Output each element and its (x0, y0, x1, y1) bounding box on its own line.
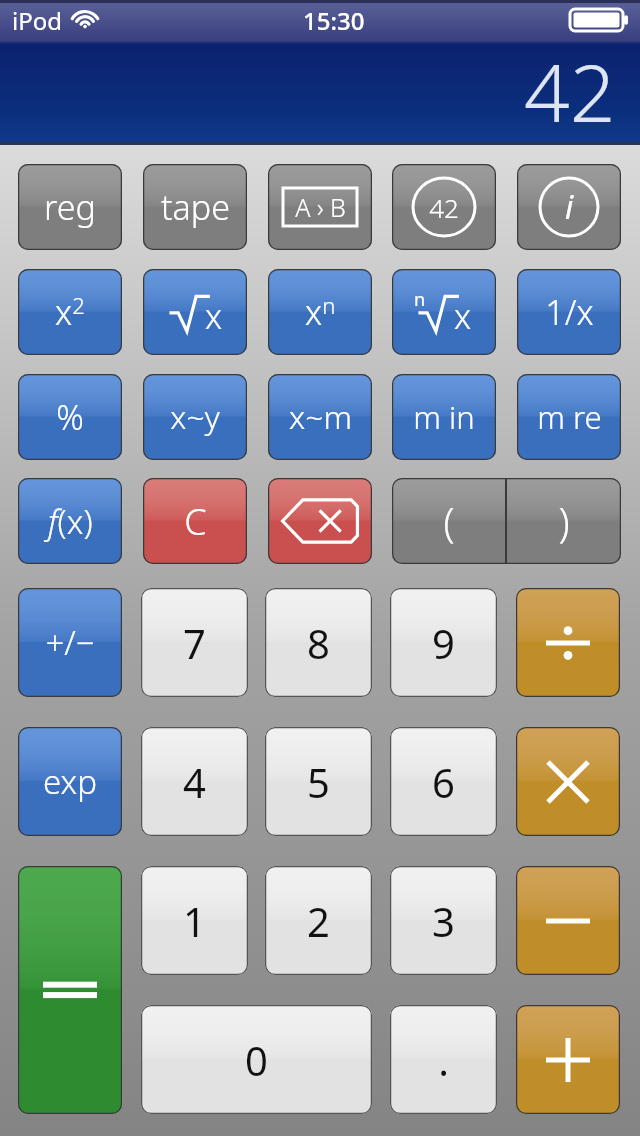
staticText: 2 (307, 894, 330, 948)
button[interactable]: ) (507, 478, 621, 564)
staticText: 42 (524, 36, 616, 145)
staticText: x~y (170, 395, 220, 439)
button[interactable]: Equals (18, 866, 122, 1114)
button[interactable]: Parentheses (392, 478, 621, 564)
staticText: . (438, 1033, 449, 1087)
button[interactable]: Delete (268, 478, 372, 564)
staticText: C (184, 497, 207, 546)
button[interactable]: Swap A and B (268, 164, 372, 250)
staticText: 5 (307, 755, 330, 809)
button[interactable]: Multiply (516, 727, 620, 836)
button[interactable]: . (390, 1005, 497, 1114)
button[interactable]: 7 (141, 588, 248, 697)
staticText: xn (305, 289, 336, 335)
button[interactable]: xn (268, 269, 372, 355)
button[interactable]: +/− (18, 588, 122, 697)
button[interactable]: % (18, 374, 122, 460)
staticText: 9 (432, 616, 455, 670)
button[interactable]: Square root (143, 269, 247, 355)
staticText: reg (44, 184, 96, 230)
button[interactable]: nth root (392, 269, 496, 355)
button[interactable]: 2 (265, 866, 372, 975)
button[interactable]: x~y (143, 374, 247, 460)
button[interactable]: x~m (268, 374, 372, 460)
staticText: x2 (55, 289, 85, 335)
button[interactable]: 9 (390, 588, 497, 697)
button[interactable]: 3 (390, 866, 497, 975)
staticText: ) (558, 494, 570, 548)
staticText: f(x) (48, 499, 93, 544)
button[interactable]: 0 (141, 1005, 372, 1114)
staticText: ( (443, 494, 455, 548)
staticText: +/− (45, 620, 95, 665)
button[interactable]: reg (18, 164, 122, 250)
button[interactable]: Answer 42 (392, 164, 496, 250)
staticText: 42 (429, 190, 459, 225)
staticText: 1/x (545, 289, 594, 335)
button[interactable]: exp (18, 727, 122, 836)
button[interactable]: 5 (265, 727, 372, 836)
staticText: 7 (183, 616, 206, 670)
staticText: % (56, 394, 84, 440)
button[interactable]: 8 (265, 588, 372, 697)
staticText: 4 (183, 755, 206, 809)
button[interactable]: m re (517, 374, 621, 460)
button[interactable]: x2 (18, 269, 122, 355)
button[interactable]: Minus (516, 866, 620, 975)
button[interactable]: 1/x (517, 269, 621, 355)
staticText: x (205, 293, 223, 339)
staticText: m re (537, 396, 602, 438)
button[interactable]: f(x) (18, 478, 122, 564)
button[interactable]: 4 (141, 727, 248, 836)
staticText: exp (43, 759, 97, 804)
staticText: 0 (245, 1033, 268, 1087)
staticText: A › B (295, 190, 346, 224)
staticText: i (565, 185, 574, 229)
staticText: 6 (432, 755, 455, 809)
staticText: 1 (183, 894, 206, 948)
staticText: 15:30 (303, 4, 365, 37)
button[interactable]: Divide (516, 588, 620, 697)
button[interactable]: Info (517, 164, 621, 250)
button[interactable]: Plus (516, 1005, 620, 1114)
staticText: tape (161, 184, 230, 230)
staticText: m in (413, 396, 475, 438)
staticText: x (454, 293, 472, 339)
staticText: 3 (432, 894, 455, 948)
staticText: x~m (289, 395, 352, 439)
staticText: iPod (12, 4, 62, 37)
button[interactable]: ( (392, 478, 505, 564)
button[interactable]: m in (392, 374, 496, 460)
staticText: n (414, 287, 426, 312)
staticText: 8 (307, 616, 330, 670)
button[interactable]: 1 (141, 866, 248, 975)
button[interactable]: 6 (390, 727, 497, 836)
button[interactable]: C (143, 478, 247, 564)
button[interactable]: tape (143, 164, 247, 250)
